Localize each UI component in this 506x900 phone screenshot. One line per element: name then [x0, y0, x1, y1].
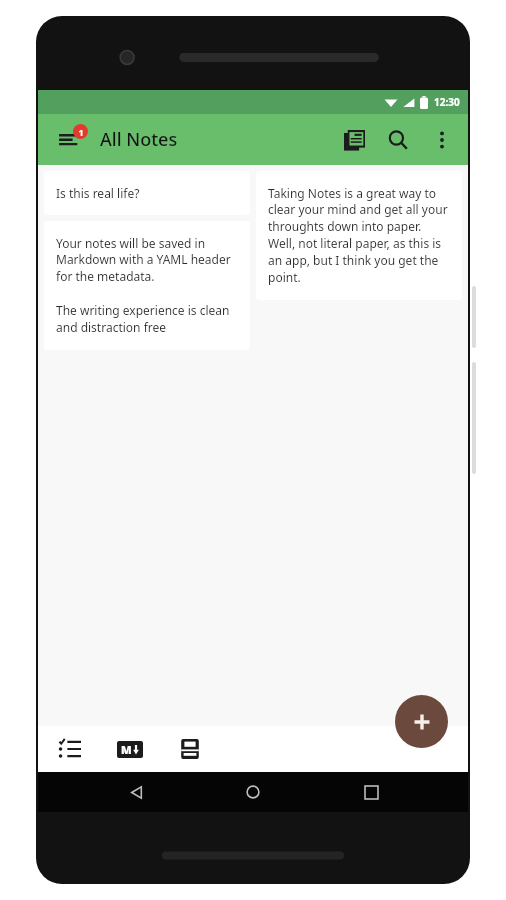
staticText: 1	[78, 126, 84, 138]
button[interactable]: Your notes will be saved in Markdown wit…	[44, 221, 250, 350]
button[interactable]: Checklist	[50, 729, 90, 769]
button[interactable]: Home	[233, 772, 273, 812]
button[interactable]: Open navigation drawer	[48, 118, 92, 162]
button[interactable]: Markdown	[110, 729, 150, 769]
staticText: Is this real life?	[56, 185, 140, 201]
button[interactable]: Notebook	[170, 729, 210, 769]
button[interactable]: Toggle view	[332, 118, 376, 162]
button[interactable]: Back	[116, 772, 156, 812]
staticText: All Notes	[100, 127, 178, 152]
button[interactable]: Add note	[395, 695, 448, 748]
staticText: Taking Notes is a great way to clear you…	[268, 185, 450, 286]
button[interactable]: Recent apps	[351, 772, 391, 812]
staticText: M	[121, 742, 132, 757]
staticText: Your notes will be saved in Markdown wit…	[56, 235, 238, 336]
button[interactable]: More options	[420, 118, 464, 162]
button[interactable]: Is this real life?	[44, 171, 250, 215]
button[interactable]: Taking Notes is a great way to clear you…	[256, 171, 462, 300]
staticText: 12:30	[434, 95, 460, 109]
button[interactable]: Search	[376, 118, 420, 162]
